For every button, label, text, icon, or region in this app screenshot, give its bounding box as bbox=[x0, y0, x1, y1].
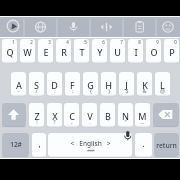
button[interactable]: T bbox=[74, 39, 89, 63]
button[interactable]: B bbox=[100, 103, 115, 127]
button[interactable] bbox=[156, 17, 180, 37]
staticText: C bbox=[69, 110, 75, 122]
staticText: Y bbox=[97, 46, 103, 58]
staticText: P bbox=[169, 46, 175, 58]
staticText: G bbox=[87, 79, 94, 91]
staticText: " bbox=[124, 118, 127, 125]
staticText: S bbox=[34, 79, 39, 91]
staticText: T bbox=[79, 46, 85, 58]
button[interactable]: N bbox=[118, 103, 133, 127]
staticText: F bbox=[70, 79, 75, 91]
staticText: ( bbox=[90, 87, 92, 94]
staticText: 6 bbox=[102, 39, 105, 45]
button[interactable]: Q bbox=[2, 39, 17, 63]
staticText: 9 bbox=[156, 39, 159, 45]
staticText: H bbox=[105, 79, 112, 91]
staticText: A bbox=[16, 79, 22, 91]
staticText: . bbox=[142, 138, 145, 149]
staticText: O bbox=[150, 46, 158, 58]
staticText: / bbox=[35, 87, 38, 94]
button[interactable]: I bbox=[128, 39, 143, 63]
button[interactable] bbox=[57, 17, 90, 37]
button[interactable]: G bbox=[83, 72, 98, 96]
button[interactable]: P bbox=[164, 39, 179, 63]
staticText: Q bbox=[6, 46, 14, 58]
button[interactable]: . bbox=[135, 133, 152, 157]
staticText: 4 bbox=[66, 39, 69, 45]
staticText: U bbox=[114, 46, 121, 58]
button[interactable]: U bbox=[110, 39, 125, 63]
button[interactable] bbox=[123, 17, 156, 37]
staticText: < English > bbox=[70, 139, 111, 148]
staticText: W bbox=[23, 46, 32, 58]
staticText: @ bbox=[160, 87, 165, 94]
button[interactable]: H bbox=[101, 72, 116, 96]
button[interactable] bbox=[2, 103, 26, 127]
staticText: 1 bbox=[12, 39, 15, 45]
staticText: E bbox=[43, 46, 49, 58]
staticText: 8 bbox=[138, 39, 141, 45]
staticText: 3 bbox=[48, 39, 51, 45]
button[interactable]: W bbox=[20, 39, 35, 63]
staticText: : bbox=[54, 87, 56, 94]
button[interactable]: Z bbox=[29, 103, 44, 127]
staticText: ? bbox=[53, 118, 56, 125]
button[interactable]: J bbox=[119, 72, 134, 96]
button[interactable]: X bbox=[47, 103, 62, 127]
staticText: V bbox=[87, 110, 93, 122]
staticText: J bbox=[125, 79, 128, 91]
staticText: ; bbox=[72, 87, 74, 94]
button[interactable]: Y bbox=[92, 39, 107, 63]
button[interactable] bbox=[90, 17, 123, 37]
button[interactable] bbox=[153, 103, 179, 127]
staticText: L bbox=[160, 79, 165, 91]
staticText: 2 bbox=[30, 39, 33, 45]
button[interactable]: A bbox=[11, 72, 26, 96]
button[interactable] bbox=[48, 133, 132, 157]
button[interactable]: C bbox=[64, 103, 79, 127]
button[interactable] bbox=[24, 17, 57, 37]
staticText: ) bbox=[108, 87, 110, 94]
staticText: M bbox=[138, 110, 147, 122]
staticText: 7 bbox=[120, 39, 123, 45]
staticText: , bbox=[38, 138, 41, 149]
button[interactable]: R bbox=[56, 39, 71, 63]
button[interactable]: E bbox=[38, 39, 53, 63]
staticText: 12# bbox=[10, 140, 22, 149]
button[interactable]: return bbox=[154, 133, 179, 157]
staticText: K bbox=[142, 79, 148, 91]
button[interactable]: O bbox=[146, 39, 161, 63]
button[interactable]: S bbox=[29, 72, 44, 96]
staticText: & bbox=[142, 87, 147, 94]
staticText: X bbox=[52, 110, 58, 122]
staticText: Z bbox=[34, 110, 40, 122]
staticText: 0 bbox=[174, 39, 177, 45]
staticText: $ bbox=[125, 87, 129, 94]
staticText: , bbox=[71, 118, 73, 125]
staticText: N bbox=[122, 110, 129, 122]
staticText: 5 bbox=[84, 39, 87, 45]
staticText: return bbox=[156, 141, 177, 150]
staticText: I bbox=[134, 46, 138, 58]
button[interactable] bbox=[0, 17, 24, 37]
staticText: R bbox=[61, 46, 67, 58]
button[interactable]: K bbox=[137, 72, 152, 96]
staticText: B bbox=[105, 110, 111, 122]
button[interactable]: M bbox=[135, 103, 150, 127]
staticText: ! bbox=[36, 118, 38, 125]
staticText: ' bbox=[107, 118, 109, 125]
button[interactable]: V bbox=[82, 103, 97, 127]
button[interactable]: L bbox=[155, 72, 170, 96]
button[interactable]: D bbox=[47, 72, 62, 96]
staticText: . bbox=[89, 118, 91, 125]
button[interactable]: F bbox=[65, 72, 80, 96]
button[interactable]: , bbox=[32, 133, 46, 157]
staticText: D bbox=[51, 79, 58, 91]
staticText: - bbox=[18, 87, 20, 94]
button[interactable]: 12# bbox=[2, 133, 29, 157]
staticText: … bbox=[140, 118, 145, 125]
